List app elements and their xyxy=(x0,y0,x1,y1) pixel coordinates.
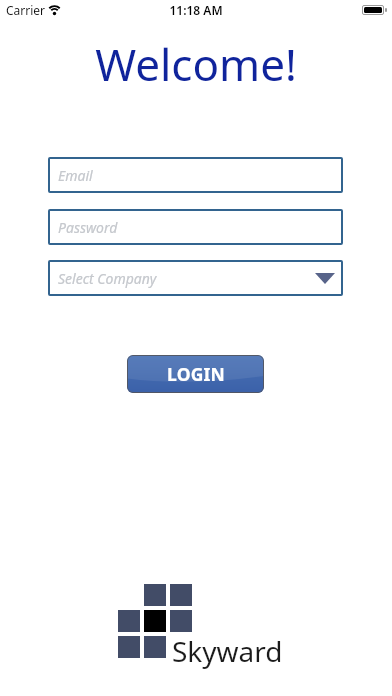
button[interactable]: LOGIN xyxy=(127,355,264,393)
button[interactable]: Password xyxy=(48,209,343,245)
staticText: 11:18 AM xyxy=(0,2,392,18)
staticText: Carrier xyxy=(6,2,46,18)
staticText: LOGIN xyxy=(167,362,225,386)
button[interactable]: Select Company xyxy=(48,260,343,296)
staticText: Skyward xyxy=(172,632,283,670)
button[interactable]: Email xyxy=(48,157,343,193)
staticText: Select Company xyxy=(58,269,157,288)
staticText: Password xyxy=(58,218,118,237)
staticText: Email xyxy=(58,166,93,185)
staticText: Welcome! xyxy=(0,34,392,94)
